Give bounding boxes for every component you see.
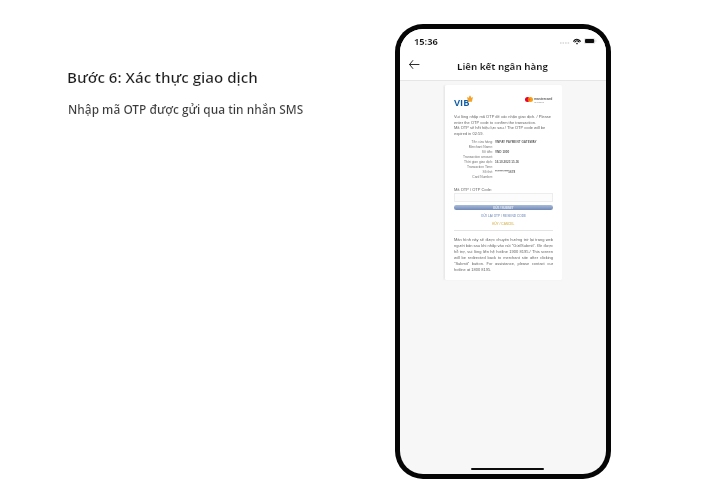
staticText: Mã OTP / OTP Code: bbox=[454, 187, 493, 191]
button[interactable] bbox=[454, 193, 553, 202]
staticText: Vui lòng nhập mã OTP để xác nhận giao dị… bbox=[454, 114, 553, 125]
staticText: Thời gian giao dịch: Transaction Time: bbox=[454, 160, 493, 169]
staticText: ***********5678 bbox=[495, 170, 516, 173]
staticText: VND 1000 bbox=[495, 150, 510, 153]
staticText: HỦY / CANCEL bbox=[492, 222, 515, 226]
staticText: GỬI / SUBMIT bbox=[493, 206, 514, 209]
staticText: Số thẻ: Card Number: bbox=[454, 170, 493, 179]
staticText: 16.10.2023 15.36 bbox=[495, 160, 520, 163]
staticText: Liên kết ngân hàng bbox=[457, 60, 549, 73]
staticText: Nhập mã OTP được gửi qua tin nhắn SMS bbox=[68, 101, 304, 117]
button[interactable]: HỦY / CANCEL bbox=[454, 222, 553, 226]
staticText: ID Check bbox=[534, 101, 544, 104]
staticText: GỬI LẠI OTP / RESEND CODE bbox=[481, 214, 527, 218]
staticText: VIB bbox=[454, 96, 470, 106]
button[interactable]: GỬI / SUBMIT bbox=[454, 205, 553, 210]
staticText: VNPAY PAYMENT GATEWAY bbox=[495, 140, 537, 143]
staticText: 15:36 bbox=[414, 35, 438, 48]
button[interactable]: GỬI LẠI OTP / RESEND CODE bbox=[454, 214, 553, 218]
staticText: mastercard bbox=[534, 97, 553, 101]
button[interactable]: Back bbox=[406, 57, 421, 72]
staticText: Tên cửa hàng: Merchant Name: bbox=[454, 140, 493, 149]
staticText: Mã OTP sẽ hết hiệu lực sau / The OTP cod… bbox=[454, 125, 553, 136]
staticText: Số tiền: Transaction amount: bbox=[454, 150, 493, 159]
staticText: Màn hình này sẽ được chuyển hướng trở lạ… bbox=[454, 237, 553, 272]
staticText: Bước 6: Xác thực giao dịch bbox=[67, 67, 258, 88]
